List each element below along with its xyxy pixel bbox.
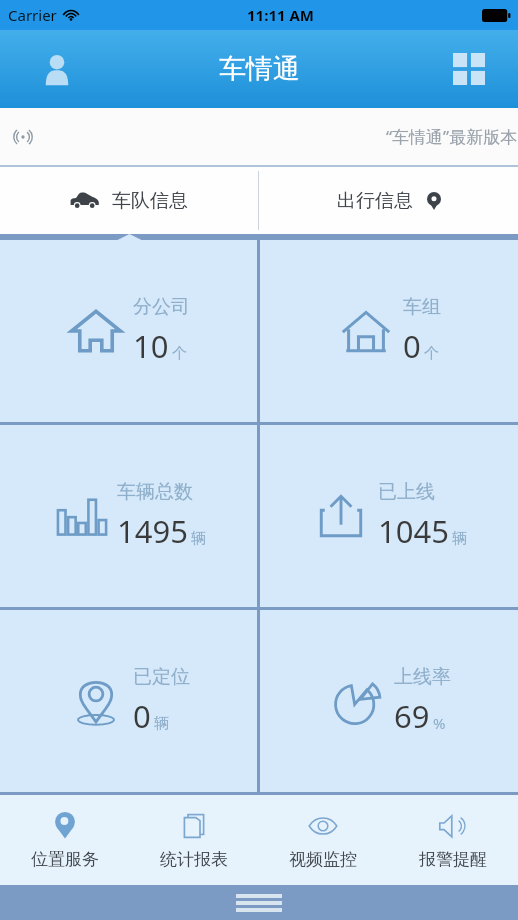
button[interactable]: 已上线 <box>260 425 518 607</box>
staticText: 辆 <box>154 714 169 733</box>
staticText: 辆 <box>452 529 467 548</box>
staticText: 已上线 <box>378 480 435 504</box>
staticText: 11:11 AM <box>247 5 314 25</box>
button[interactable]: 位置服务 <box>0 795 129 885</box>
staticText: 车辆总数 <box>117 480 193 504</box>
staticText: 辆 <box>191 529 206 548</box>
staticText: “车情通”最新版本 <box>386 125 518 148</box>
staticText: 69 <box>394 695 430 737</box>
staticText: 1495 <box>117 510 188 552</box>
staticText: 0 <box>133 695 151 737</box>
button[interactable]: 分公司 <box>0 240 257 422</box>
staticText: 车组 <box>403 295 441 319</box>
staticText: 出行信息 <box>337 189 413 213</box>
staticText: 上线率 <box>394 665 451 689</box>
button[interactable]: Profile <box>34 46 80 92</box>
staticText: 个 <box>424 344 439 363</box>
staticText: 车情通 <box>219 52 300 86</box>
button[interactable]: 报警提醒 <box>388 795 518 885</box>
staticText: 个 <box>172 344 187 363</box>
button[interactable]: 视频监控 <box>258 795 388 885</box>
staticText: 分公司 <box>133 295 190 319</box>
button[interactable]: 车队信息 <box>0 167 258 234</box>
staticText: 10 <box>133 325 169 367</box>
staticText: 统计报表 <box>160 849 228 870</box>
staticText: 位置服务 <box>31 849 99 870</box>
button[interactable]: Broadcast <box>0 108 518 165</box>
staticText: 视频监控 <box>289 849 357 870</box>
staticText: % <box>433 713 446 733</box>
button[interactable]: 出行信息 <box>259 167 518 234</box>
button[interactable]: Menu grid <box>446 46 492 92</box>
staticText: Carrier <box>8 5 57 25</box>
button[interactable]: 统计报表 <box>129 795 258 885</box>
staticText: 车队信息 <box>112 189 188 213</box>
staticText: 报警提醒 <box>419 849 487 870</box>
button[interactable]: 上线率 <box>260 610 518 792</box>
button[interactable]: 已定位 <box>0 610 257 792</box>
staticText: 1045 <box>378 510 449 552</box>
staticText: 0 <box>403 325 421 367</box>
button[interactable]: 车组 <box>260 240 518 422</box>
other: Broadcast <box>12 126 34 148</box>
staticText: 已定位 <box>133 665 190 689</box>
button[interactable]: 车辆总数 <box>0 425 257 607</box>
